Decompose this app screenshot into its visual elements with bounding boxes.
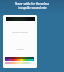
staticText: Never settle for themeless <box>15 2 49 6</box>
staticText: Accent <box>3 47 37 50</box>
staticText: incapable second rate <box>18 6 47 10</box>
button[interactable]: Vivid hues <box>5 59 34 61</box>
button[interactable]: Preview <box>6 17 35 21</box>
button[interactable]: Deep shades <box>5 57 34 59</box>
button[interactable]: Pale tints <box>5 62 32 64</box>
staticText: Choose colour <box>3 30 37 33</box>
